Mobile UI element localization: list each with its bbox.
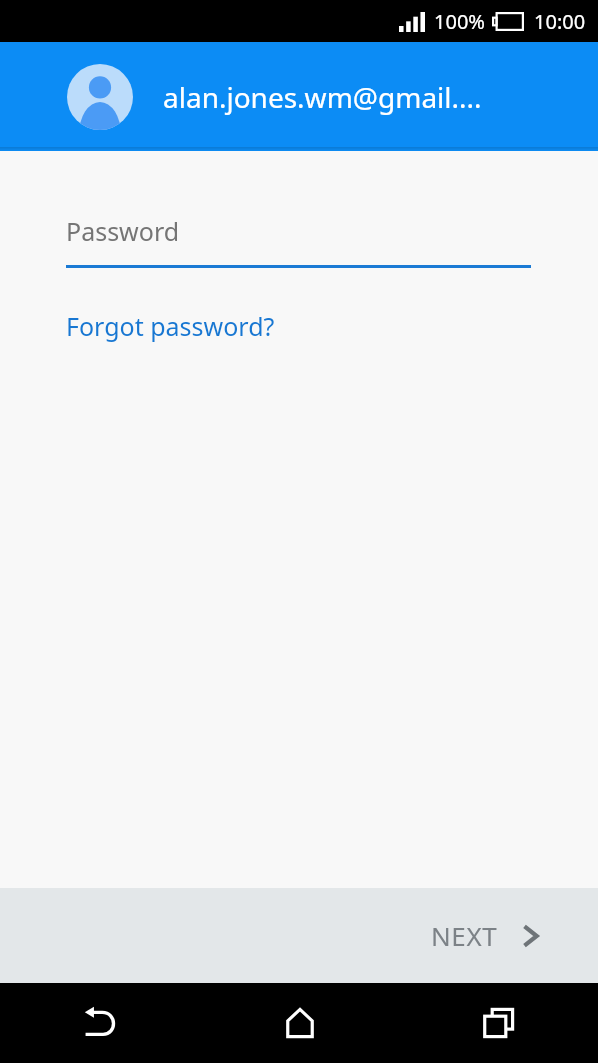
button[interactable]: Back bbox=[0, 983, 200, 1063]
button[interactable]: Password bbox=[0, 214, 598, 268]
button[interactable]: Account avatar bbox=[0, 42, 598, 151]
button[interactable]: NEXT bbox=[401, 888, 598, 983]
staticText: NEXT bbox=[431, 918, 498, 953]
staticText: Password bbox=[66, 214, 180, 248]
staticText: 10:00 bbox=[534, 8, 586, 35]
button[interactable]: Forgot password? bbox=[0, 305, 295, 347]
staticText: 100% bbox=[434, 8, 485, 35]
button[interactable]: Home bbox=[200, 983, 399, 1063]
staticText: alan.jones.wm@gmail.... bbox=[163, 78, 482, 116]
button[interactable]: Recent apps bbox=[399, 983, 598, 1063]
other: Account avatar bbox=[67, 64, 133, 130]
staticText: Forgot password? bbox=[66, 309, 275, 343]
